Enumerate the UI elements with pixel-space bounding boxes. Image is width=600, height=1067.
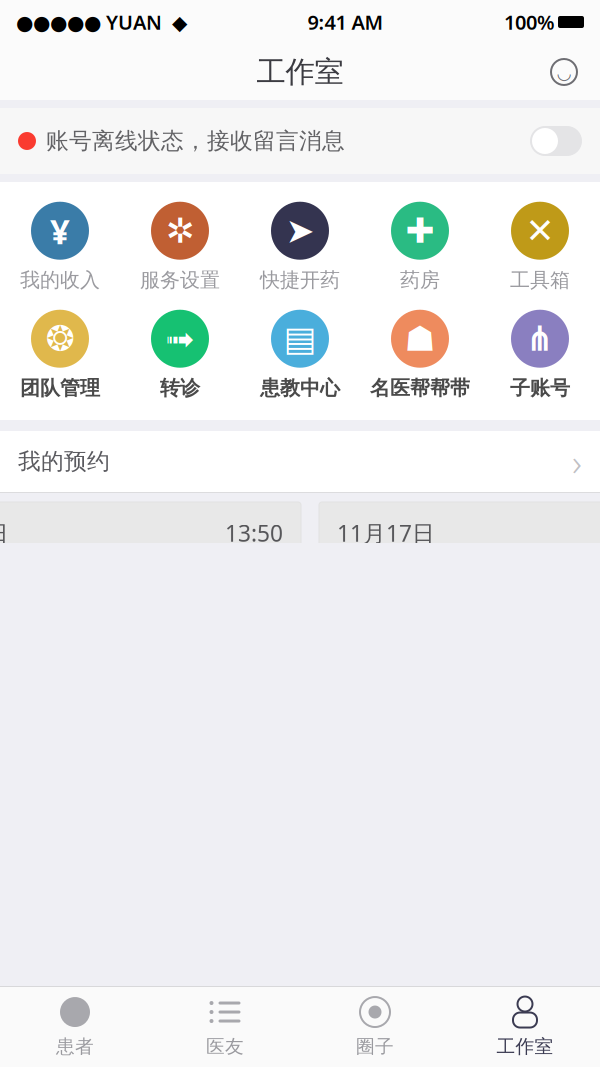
staticText: 工作室 bbox=[256, 54, 343, 90]
staticText: 名医帮帮带 bbox=[370, 376, 470, 400]
button[interactable]: ✲ bbox=[120, 193, 240, 301]
staticText: 患者 bbox=[56, 1035, 94, 1058]
staticText: ✲ bbox=[165, 211, 194, 250]
button[interactable]: ❂ bbox=[0, 301, 120, 409]
button[interactable]: ▤ bbox=[240, 301, 360, 409]
button[interactable]: 工作室 bbox=[450, 987, 600, 1067]
staticText: 服务设置 bbox=[140, 268, 220, 292]
staticText: 11月17日 bbox=[337, 518, 435, 548]
staticText: 转诊 bbox=[160, 376, 200, 400]
button[interactable]: 患者 bbox=[0, 987, 150, 1067]
button[interactable]: ⋔ bbox=[480, 301, 600, 409]
button[interactable]: ☗ bbox=[360, 301, 480, 409]
staticText: 患教中心 bbox=[260, 376, 340, 400]
button[interactable]: ➤ bbox=[240, 193, 360, 301]
button[interactable]: 客服 bbox=[540, 48, 588, 96]
staticText: 13:50 bbox=[225, 518, 283, 548]
button[interactable]: 11月17日 bbox=[319, 502, 600, 666]
staticText: ◡ bbox=[557, 63, 570, 83]
button[interactable]: 11月14日 bbox=[0, 502, 301, 666]
staticText: ✕ bbox=[525, 211, 554, 250]
staticText: 我的预约 bbox=[18, 448, 110, 475]
staticText: ❂ bbox=[45, 319, 74, 358]
staticText: 11月14日 bbox=[0, 518, 9, 548]
staticText: 圈子 bbox=[356, 1035, 394, 1058]
staticText: › bbox=[572, 437, 582, 486]
staticText: ▤ bbox=[283, 319, 316, 358]
staticText: 工具箱 bbox=[510, 268, 570, 292]
staticText: 团队管理 bbox=[20, 376, 100, 400]
button[interactable]: ¥ bbox=[0, 193, 120, 301]
staticText: 快捷开药 bbox=[260, 268, 340, 292]
staticText: 100% bbox=[504, 9, 555, 35]
staticText: ¥ bbox=[50, 208, 70, 254]
button[interactable]: ✕ bbox=[480, 193, 600, 301]
staticText: 医友 bbox=[206, 1035, 244, 1058]
staticText: ●●●●● YUAN ◆ bbox=[16, 9, 187, 35]
button[interactable]: 账号离线状态，接收留言消息 bbox=[0, 108, 600, 174]
staticText: ✚ bbox=[405, 211, 434, 250]
button[interactable]: 圈子 bbox=[300, 987, 450, 1067]
button[interactable]: 我的预约 bbox=[0, 431, 600, 493]
staticText: ➟ bbox=[165, 319, 194, 358]
staticText: 账号离线状态，接收留言消息 bbox=[46, 127, 345, 155]
button[interactable]: 医友 bbox=[150, 987, 300, 1067]
staticText: ☗ bbox=[404, 319, 435, 358]
staticText: 9:41 AM bbox=[307, 9, 383, 35]
staticText: 工作室 bbox=[496, 1035, 553, 1058]
staticText: 子账号 bbox=[510, 376, 570, 400]
staticText: ⋔ bbox=[525, 319, 554, 358]
button[interactable]: ✚ bbox=[360, 193, 480, 301]
button[interactable]: ➟ bbox=[120, 301, 240, 409]
staticText: ➤ bbox=[285, 211, 314, 250]
staticText: 我的收入 bbox=[20, 268, 100, 292]
staticText: 药房 bbox=[400, 268, 440, 292]
